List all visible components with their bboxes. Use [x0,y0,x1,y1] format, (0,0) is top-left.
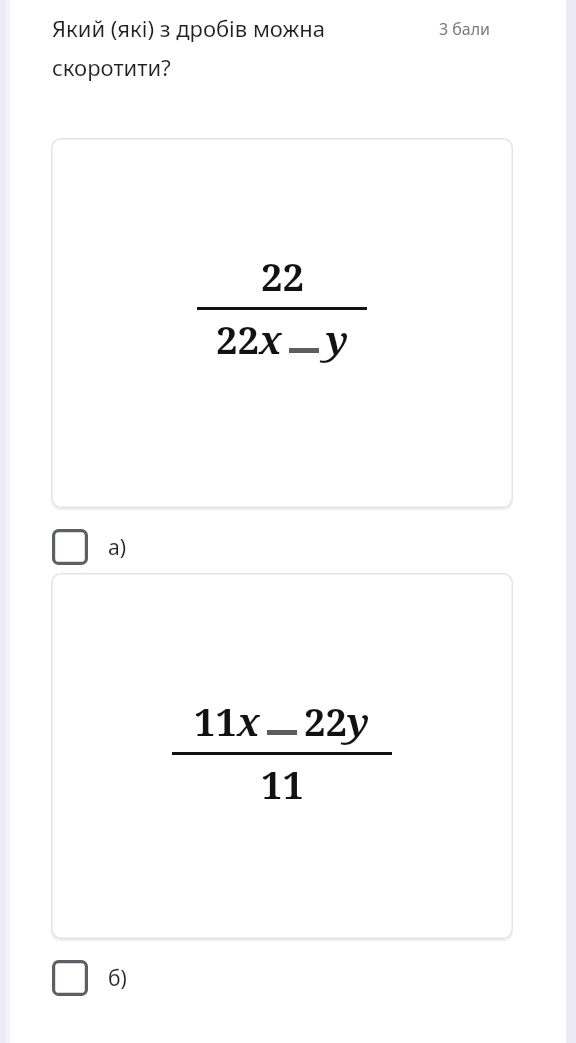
staticText: 11 [194,695,237,747]
staticText: x [237,695,260,747]
staticText: a) [108,533,127,562]
button[interactable]: 22 [51,138,513,508]
staticText: 22 [261,250,304,302]
staticText: 11 [261,758,304,810]
staticText: 22 [216,313,259,365]
staticText: 22 [304,695,347,747]
staticText: 3 бали [398,18,490,40]
button[interactable]: Checkbox a) [0,529,576,565]
staticText: y [326,313,349,365]
button[interactable]: Checkbox б) [0,960,576,996]
staticText: x [259,313,282,365]
button[interactable]: 11 [51,573,513,939]
other: Checkbox a) [52,529,88,565]
other: Checkbox б) [52,960,88,996]
staticText: Який (які) з дробів можна скоротити? [52,13,392,83]
staticText: б) [108,964,127,993]
staticText: y [347,695,370,747]
